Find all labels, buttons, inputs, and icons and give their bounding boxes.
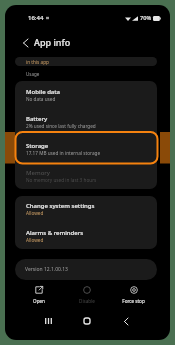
button[interactable]: Mobile data <box>15 81 157 108</box>
button[interactable]: Battery <box>15 108 157 135</box>
staticText: Battery <box>26 115 48 123</box>
button[interactable]: Home <box>75 309 99 333</box>
staticText: 70% <box>140 14 152 22</box>
staticText: Change system settings <box>26 202 95 210</box>
staticText: 2% used since last fully charged <box>26 123 96 129</box>
staticText: Usage <box>26 71 40 77</box>
staticText: Alarms & reminders <box>26 229 84 237</box>
button[interactable]: Back <box>114 309 138 333</box>
staticText: in this app <box>26 59 49 65</box>
staticText: Disable <box>79 298 95 304</box>
staticText: 16:44 <box>28 14 44 22</box>
staticText: Memory <box>26 169 51 177</box>
staticText: Force stop <box>122 298 145 304</box>
staticText: App info <box>34 36 71 48</box>
staticText: No data used <box>26 96 56 102</box>
staticText: Allowed <box>26 210 44 216</box>
button[interactable]: Change system settings <box>15 196 157 222</box>
button[interactable]: Storage <box>15 135 157 162</box>
button[interactable]: Navigate up <box>19 36 32 49</box>
button[interactable]: Disable <box>63 286 110 304</box>
staticText: Mobile data <box>26 88 61 96</box>
button[interactable]: Open <box>15 286 62 304</box>
staticText: 17.17 MB used in internal storage <box>26 150 101 156</box>
staticText: Open <box>33 298 45 304</box>
staticText: Version 12.1.00.13 <box>25 266 68 273</box>
button[interactable]: Recent apps <box>36 309 60 333</box>
staticText: Storage <box>26 142 49 150</box>
button[interactable]: Alarms & reminders <box>15 222 157 249</box>
button[interactable]: Force stop <box>110 286 157 304</box>
staticText: No memory used in last 3 hours <box>26 177 97 183</box>
staticText: Allowed <box>26 237 44 243</box>
button[interactable]: Memory <box>15 162 157 189</box>
